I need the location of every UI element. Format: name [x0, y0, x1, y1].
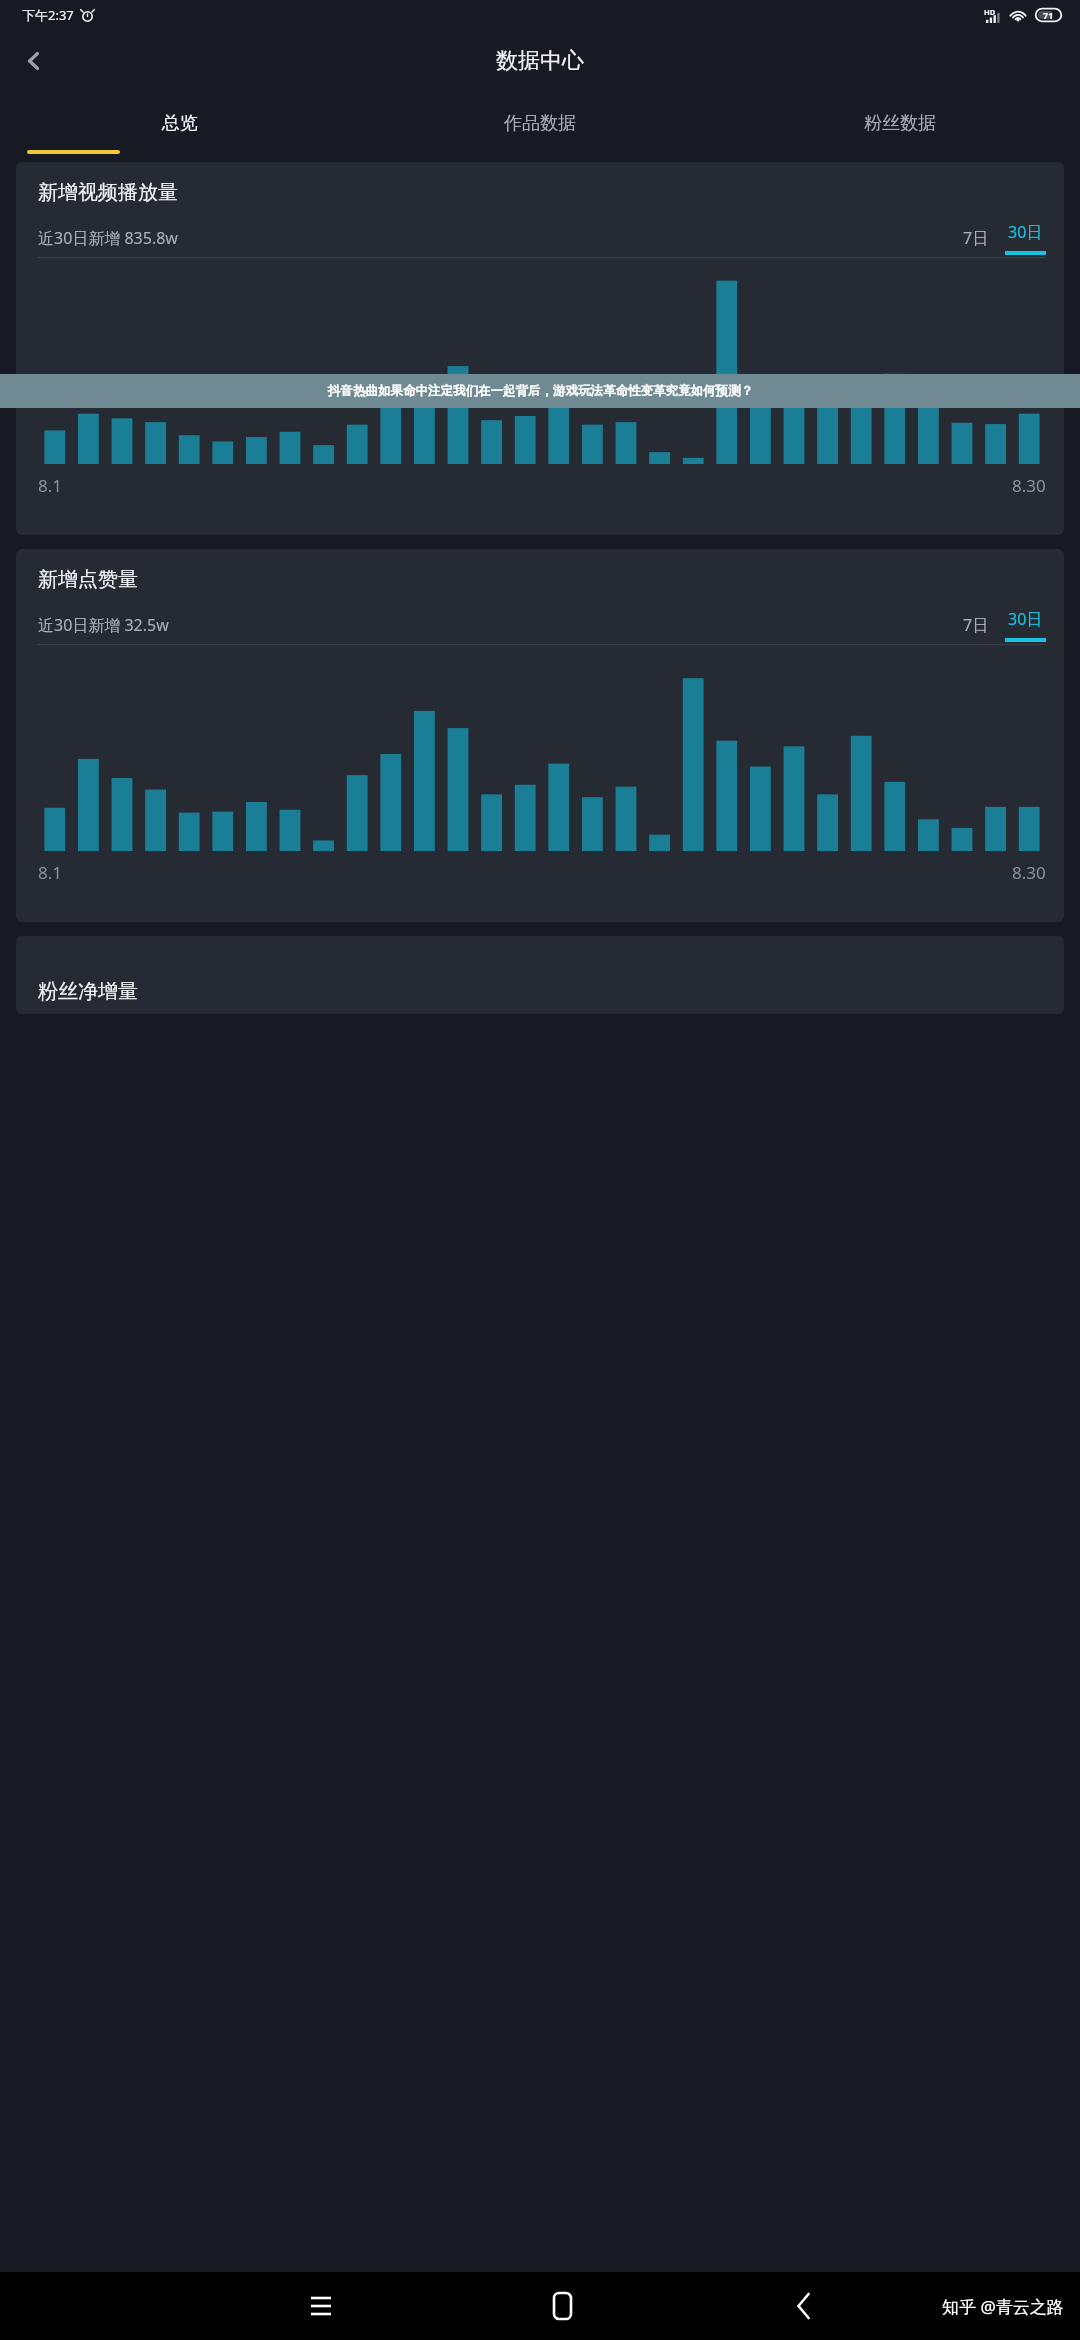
staticText: 知乎 @青云之路	[942, 2295, 1064, 2318]
button[interactable]: Recents	[295, 2280, 347, 2332]
button[interactable]: 新增视频播放量	[16, 162, 1064, 535]
button[interactable]: 粉丝净增量	[16, 936, 1064, 1014]
staticText: 新增视频播放量	[38, 180, 178, 205]
button[interactable]: 7日	[957, 225, 995, 251]
button[interactable]: Home	[536, 2280, 588, 2332]
staticText: 30日	[1008, 221, 1043, 243]
staticText: 近30日新增 835.8w	[38, 227, 178, 249]
staticText: 数据中心	[496, 47, 584, 75]
staticText: 30日	[1008, 608, 1043, 630]
button[interactable]: 新增点赞量	[16, 549, 1064, 922]
staticText: 8.1	[38, 474, 63, 497]
staticText: 粉丝数据	[864, 112, 936, 135]
button[interactable]: 30日	[1005, 608, 1046, 642]
button[interactable]: 作品数据	[360, 92, 720, 154]
button[interactable]: 7日	[957, 612, 995, 638]
staticText: 抖音热曲如果命中注定我们在一起背后，游戏玩法革命性变革究竟如何预测？	[328, 383, 753, 399]
staticText: 7日	[963, 614, 989, 636]
button[interactable]: 总览	[0, 92, 360, 154]
staticText: 总览	[162, 112, 198, 135]
button[interactable]: Back	[777, 2280, 829, 2332]
staticText: 8.30	[1012, 474, 1046, 497]
staticText: 粉丝净增量	[38, 979, 138, 1004]
button[interactable]: Back	[10, 37, 58, 85]
staticText: 71	[1043, 9, 1054, 21]
staticText: 作品数据	[504, 112, 576, 135]
staticText: 7日	[963, 227, 989, 249]
staticText: 新增点赞量	[38, 567, 138, 592]
staticText: HD	[984, 7, 996, 17]
staticText: 8.30	[1012, 861, 1046, 884]
button[interactable]: 30日	[1005, 221, 1046, 255]
staticText: 8.1	[38, 861, 63, 884]
button[interactable]: 粉丝数据	[720, 92, 1080, 154]
staticText: 下午2:37	[22, 6, 74, 24]
staticText: 近30日新增 32.5w	[38, 614, 169, 636]
